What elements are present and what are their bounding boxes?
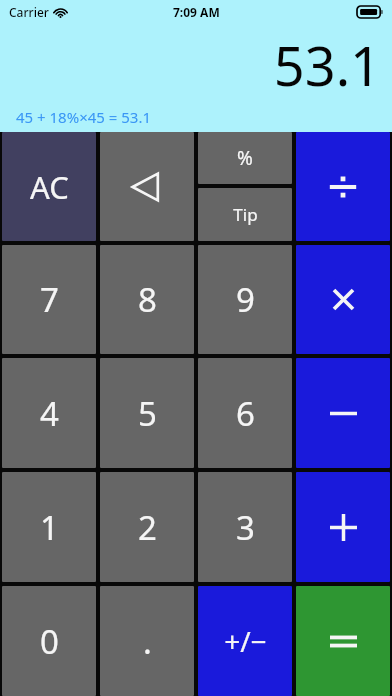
staticText: 6 (236, 391, 255, 436)
staticText: 5 (138, 391, 157, 436)
button[interactable]: Divide (296, 132, 390, 241)
staticText: AC (30, 166, 69, 208)
button[interactable]: 7 (2, 245, 96, 354)
button[interactable]: 2 (100, 472, 194, 582)
button[interactable]: 9 (198, 245, 292, 354)
button[interactable]: 4 (2, 358, 96, 468)
staticText: 0 (40, 619, 59, 664)
button[interactable]: AC (2, 132, 96, 241)
staticText: Tip (233, 203, 258, 226)
staticText: 45 + 18%×45 = 53.1 (16, 107, 152, 127)
button[interactable]: Minus (296, 358, 390, 468)
staticText: 7:09 AM (173, 4, 220, 20)
button[interactable]: Plus or minus (198, 586, 292, 696)
button[interactable]: Multiply (296, 245, 390, 354)
button[interactable]: 6 (198, 358, 292, 468)
staticText: 8 (138, 277, 157, 322)
staticText: +/− (224, 622, 267, 660)
staticText: % (237, 145, 253, 171)
button[interactable]: Percent (198, 132, 292, 184)
button[interactable]: Backspace (100, 132, 194, 241)
staticText: 7 (40, 277, 59, 322)
staticText: 3 (236, 505, 255, 550)
staticText: 2 (138, 505, 157, 550)
staticText: Carrier (9, 4, 49, 20)
button[interactable]: 1 (2, 472, 96, 582)
button[interactable]: 5 (100, 358, 194, 468)
button[interactable]: Plus (296, 472, 390, 582)
staticText: 9 (236, 277, 255, 322)
button[interactable]: Tip (198, 188, 292, 241)
staticText: . (143, 619, 152, 664)
button[interactable]: 0 (2, 586, 96, 696)
staticText: 1 (40, 505, 59, 550)
button[interactable]: 8 (100, 245, 194, 354)
button[interactable]: Decimal point (100, 586, 194, 696)
button[interactable]: 3 (198, 472, 292, 582)
staticText: 4 (40, 391, 59, 436)
staticText: 53.1 (273, 28, 381, 102)
button[interactable]: Equals (296, 586, 390, 696)
